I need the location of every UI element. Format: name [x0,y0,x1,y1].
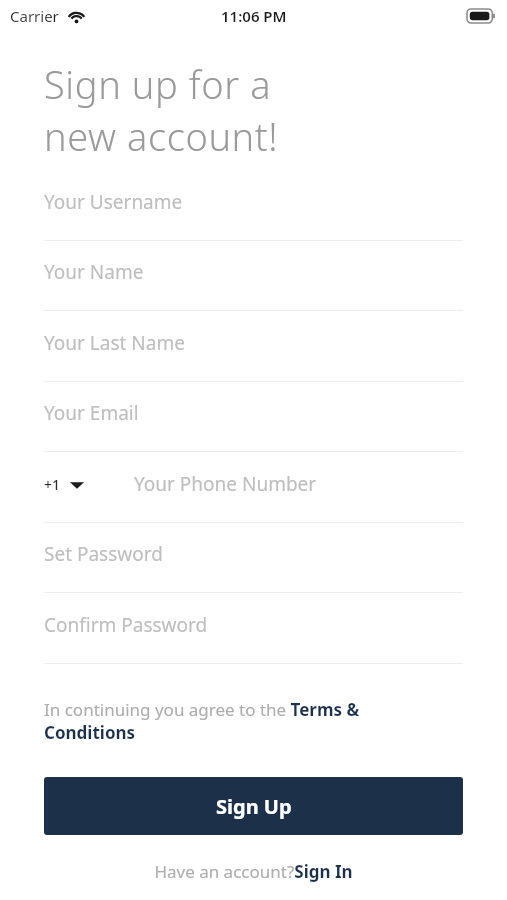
staticText: Your Email [44,400,139,426]
button[interactable]: Have an account?Sign In [154,860,353,883]
button[interactable]: Confirm Password [44,594,463,664]
button[interactable]: Set Password [44,523,463,593]
staticText: Sign up for a [44,58,272,110]
button[interactable]: In continuing you agree to the Terms & C… [44,698,424,744]
button[interactable]: Sign Up [44,777,463,835]
staticText: In continuing you agree to the Terms & C… [44,698,424,744]
staticText: Set Password [44,541,163,567]
staticText: 11:06 PM [221,6,287,26]
button[interactable]: Your Email [44,382,463,452]
staticText: Carrier [10,6,59,26]
staticText: Sign Up [216,793,292,820]
button[interactable]: Your Name [44,241,463,311]
button[interactable]: Your Phone Number [134,471,317,497]
button[interactable]: Your Last Name [44,312,463,382]
staticText: Your Name [44,259,144,285]
staticText: Your Username [44,189,183,215]
staticText: Your Phone Number [134,471,317,497]
staticText: new account! [44,110,279,162]
staticText: +1 [44,475,61,494]
button[interactable]: Your Username [44,171,463,241]
button[interactable]: Select country code [44,475,85,494]
staticText: Your Last Name [44,330,185,356]
staticText: Confirm Password [44,612,208,638]
staticText: Have an account?Sign In [154,860,353,883]
